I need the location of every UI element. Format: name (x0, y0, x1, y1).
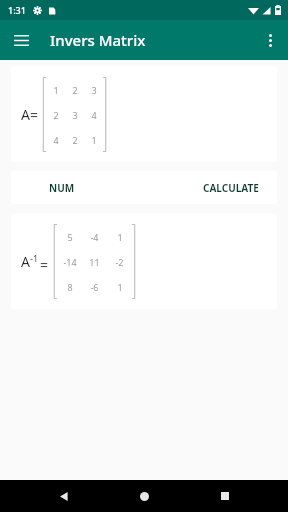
staticText: -1 (30, 252, 39, 264)
staticText: 2 (72, 84, 78, 96)
button[interactable]: A (11, 213, 277, 309)
staticText: 2 (53, 109, 59, 121)
button[interactable]: NUM (11, 171, 277, 204)
staticText: 1 (53, 84, 59, 96)
staticText: A (21, 252, 30, 271)
staticText: = (40, 255, 49, 274)
button[interactable]: A= (11, 66, 277, 162)
staticText: 5 (67, 231, 73, 243)
staticText: CALCULATE (203, 181, 259, 195)
staticText: -6 (90, 281, 99, 293)
staticText: 4 (53, 134, 59, 146)
staticText: 1 (91, 134, 97, 146)
button[interactable]: Recent apps (208, 480, 242, 512)
staticText: 3 (72, 109, 78, 121)
staticText: 2 (72, 134, 78, 146)
button[interactable]: Home (127, 480, 161, 512)
staticText: 3 (91, 84, 97, 96)
staticText: 8 (67, 281, 73, 293)
staticText: -4 (90, 231, 99, 243)
button[interactable]: NUM (41, 176, 83, 200)
staticText: 4 (91, 109, 97, 121)
button[interactable]: Back (47, 480, 81, 512)
staticText: Invers Matrix (50, 30, 146, 50)
staticText: -2 (115, 256, 124, 268)
button[interactable]: Open navigation drawer (8, 27, 34, 53)
staticText: 1 (117, 231, 123, 243)
staticText: 1:31 (8, 4, 26, 16)
staticText: 1 (117, 281, 123, 293)
button[interactable]: More options (257, 27, 283, 53)
staticText: NUM (49, 181, 75, 195)
staticText: A= (21, 105, 38, 124)
staticText: -14 (63, 256, 77, 268)
staticText: 11 (89, 256, 100, 268)
button[interactable]: CALCULATE (195, 176, 267, 200)
